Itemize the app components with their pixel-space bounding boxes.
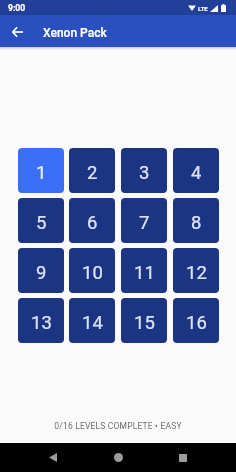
staticText: 3	[139, 162, 150, 184]
button[interactable]: 14	[69, 298, 115, 343]
button[interactable]: 4	[173, 148, 219, 193]
button[interactable]: 13	[18, 298, 64, 343]
staticText: 5	[36, 212, 47, 234]
staticText: 9:00	[8, 3, 26, 13]
staticText: LTE	[198, 5, 208, 12]
staticText: 1	[36, 162, 47, 184]
staticText: 16	[186, 312, 207, 334]
button[interactable]: Back	[38, 443, 68, 472]
staticText: 8	[191, 212, 202, 234]
staticText: 10	[82, 262, 103, 284]
staticText: 11	[134, 262, 155, 284]
button[interactable]: Back	[5, 19, 30, 44]
button[interactable]: Recents	[168, 443, 198, 472]
staticText: 9	[36, 262, 47, 284]
staticText: 4	[191, 162, 202, 184]
staticText: 6	[87, 212, 98, 234]
staticText: 15	[134, 312, 155, 334]
button[interactable]: 12	[173, 248, 219, 293]
button[interactable]: 5	[18, 198, 64, 243]
button[interactable]: 9	[18, 248, 64, 293]
staticText: 0/16 LEVELS COMPLETE • EASY	[54, 421, 182, 431]
button[interactable]: 3	[121, 148, 167, 193]
button[interactable]: 1	[18, 148, 64, 193]
button[interactable]: 11	[121, 248, 167, 293]
staticText: 2	[87, 162, 98, 184]
button[interactable]: 7	[121, 198, 167, 243]
staticText: 13	[31, 312, 52, 334]
button[interactable]: Home	[103, 443, 133, 472]
button[interactable]: 16	[173, 298, 219, 343]
button[interactable]: 8	[173, 198, 219, 243]
staticText: 7	[139, 212, 150, 234]
button[interactable]: 6	[69, 198, 115, 243]
staticText: Xenon Pack	[43, 26, 107, 40]
button[interactable]: 10	[69, 248, 115, 293]
button[interactable]: 15	[121, 298, 167, 343]
button[interactable]: 2	[69, 148, 115, 193]
staticText: 14	[82, 312, 103, 334]
staticText: 12	[186, 262, 207, 284]
